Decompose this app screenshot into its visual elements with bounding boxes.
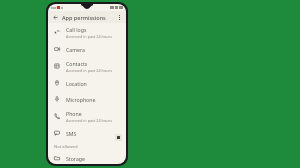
button[interactable]: Camera xyxy=(48,41,126,57)
button[interactable]: Location xyxy=(48,75,126,91)
staticText: Call logs xyxy=(66,26,87,33)
staticText: Accessed in past 24 hours xyxy=(66,118,112,123)
staticText: Contacts xyxy=(66,60,88,67)
staticText: Storage xyxy=(66,155,85,162)
button[interactable]: Storage xyxy=(48,152,126,164)
staticText: Phone xyxy=(66,110,82,117)
staticText: SMS xyxy=(66,130,77,137)
button[interactable]: Back xyxy=(51,13,59,21)
button[interactable]: Call logs xyxy=(48,23,126,41)
button[interactable]: Phone xyxy=(48,107,126,125)
staticText: Accessed in past 24 hours xyxy=(66,34,112,39)
button[interactable]: Action xyxy=(115,134,122,141)
staticText: Microphone xyxy=(66,96,96,103)
staticText: Not allowed xyxy=(54,144,78,150)
staticText: Location xyxy=(66,80,87,87)
button[interactable]: Microphone xyxy=(48,91,126,107)
button[interactable]: Contacts xyxy=(48,57,126,75)
staticText: Accessed in past 24 hours xyxy=(66,68,112,73)
staticText: App permissions xyxy=(62,14,106,21)
staticText: Camera xyxy=(66,46,85,53)
button[interactable]: More options xyxy=(115,13,123,21)
button[interactable]: SMS xyxy=(48,125,126,141)
